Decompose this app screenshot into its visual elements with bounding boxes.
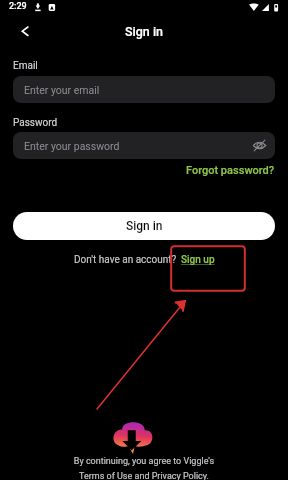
button[interactable]: Show password <box>252 138 267 153</box>
staticText: Enter your email <box>24 84 100 96</box>
staticText: Forgot password? <box>186 164 275 177</box>
staticText: Enter your password <box>24 140 120 152</box>
staticText: By continuing, you agree to Viggle's <box>0 456 288 467</box>
button[interactable]: Enter your email <box>13 76 275 103</box>
staticText: Sign in <box>126 219 163 233</box>
button[interactable]: Forgot password? <box>178 159 288 182</box>
staticText: Terms of Use and Privacy Policy. <box>0 471 288 480</box>
staticText: Email <box>13 60 38 72</box>
staticText: Sign up <box>181 254 215 266</box>
staticText: Don't have an account? <box>74 254 177 266</box>
button[interactable]: Enter your password <box>13 132 275 159</box>
staticText: Sign in <box>125 24 164 39</box>
button[interactable]: Sign up <box>181 254 215 266</box>
staticText: Password <box>13 117 58 129</box>
staticText: 2:29 <box>9 1 27 12</box>
button[interactable]: Sign in <box>13 212 275 240</box>
button[interactable]: Back <box>11 19 35 43</box>
